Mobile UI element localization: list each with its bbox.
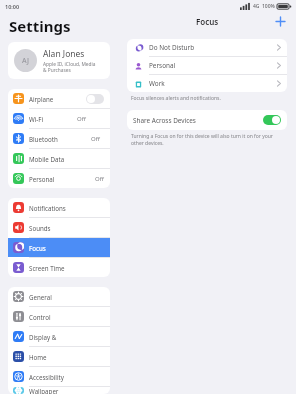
staticText: Do Not Disturb xyxy=(149,43,195,52)
button[interactable]: Bluetooth xyxy=(8,129,110,148)
staticText: Screen Time xyxy=(29,264,65,272)
button[interactable]: Do Not Disturb xyxy=(127,39,287,56)
button[interactable]: Toggle on xyxy=(263,115,281,125)
button[interactable]: Wallpaper xyxy=(8,387,110,394)
staticText: 100% xyxy=(262,3,275,10)
button[interactable]: Accessibility xyxy=(8,367,110,386)
staticText: Control Centre xyxy=(29,313,66,321)
staticText: Display & Brightness xyxy=(29,333,66,341)
staticText: Off xyxy=(95,175,104,183)
staticText: Off xyxy=(77,115,86,123)
staticText: Personal Hotspot xyxy=(29,175,62,183)
staticText: Bluetooth xyxy=(29,135,58,143)
staticText: Turning a Focus on for this device will … xyxy=(131,133,273,147)
staticText: Settings xyxy=(9,16,71,36)
staticText: Airplane Mode xyxy=(29,95,57,103)
staticText: Off xyxy=(91,135,100,143)
staticText: 4G xyxy=(253,3,260,10)
button[interactable]: Display & Brightness xyxy=(8,327,110,346)
button[interactable]: Screen Time xyxy=(8,258,110,277)
button[interactable]: Personal xyxy=(127,57,287,74)
button[interactable]: Mobile Data xyxy=(8,149,110,168)
staticText: General xyxy=(29,293,52,301)
button[interactable]: General xyxy=(8,287,110,306)
button[interactable]: Toggle off xyxy=(86,94,104,104)
staticText: Personal xyxy=(149,61,176,70)
staticText: Focus xyxy=(29,244,46,252)
staticText: Alan Jones xyxy=(43,48,85,60)
staticText: Wi-Fi xyxy=(29,115,44,123)
button[interactable]: Focus xyxy=(8,238,110,257)
staticText: Work xyxy=(149,79,165,88)
staticText: Share Across Devices xyxy=(133,116,196,125)
staticText: Notifications xyxy=(29,204,66,212)
button[interactable]: Home Screen & Dock xyxy=(8,347,110,366)
staticText: Mobile Data xyxy=(29,155,65,163)
button[interactable]: Wi-Fi xyxy=(8,109,110,128)
button[interactable]: Airplane Mode xyxy=(8,89,110,108)
staticText: Accessibility xyxy=(29,373,64,381)
staticText: Sounds xyxy=(29,224,51,232)
button[interactable]: Share Across Devices xyxy=(127,110,287,130)
button[interactable]: Add Focus xyxy=(272,13,288,29)
staticText: Apple ID, iCloud, Media & Purchases xyxy=(43,61,96,73)
staticText: Home Screen & Dock xyxy=(29,353,66,361)
button[interactable]: Work xyxy=(127,75,287,92)
staticText: 10:00 xyxy=(5,3,20,10)
button[interactable]: Personal Hotspot xyxy=(8,169,110,188)
staticText: Focus silences alerts and notifications. xyxy=(131,95,221,102)
staticText: AJ xyxy=(22,56,29,66)
button[interactable]: Control Centre xyxy=(8,307,110,326)
button[interactable]: Sounds xyxy=(8,218,110,237)
staticText: Wallpaper xyxy=(29,387,59,394)
staticText: Focus xyxy=(196,16,219,27)
button[interactable]: AJ xyxy=(8,42,110,79)
button[interactable]: Notifications xyxy=(8,198,110,217)
